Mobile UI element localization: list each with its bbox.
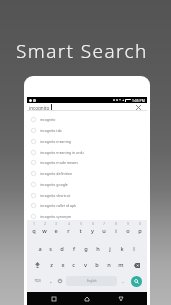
- button[interactable]: h: [92, 241, 104, 257]
- button[interactable]: incognito shortcut: [27, 190, 147, 200]
- staticText: English: [87, 279, 97, 283]
- button[interactable]: g: [80, 241, 92, 257]
- staticText: i: [115, 227, 117, 235]
- button[interactable]: 7: [98, 220, 110, 236]
- button[interactable]: 1: [28, 220, 39, 236]
- button[interactable]: incognito tab: [27, 125, 147, 135]
- button[interactable]: ,: [46, 273, 55, 289]
- staticText: y: [91, 227, 94, 235]
- staticText: 4: [68, 222, 70, 226]
- button[interactable]: Back: [114, 292, 128, 305]
- staticText: g: [84, 245, 88, 253]
- staticText: incognito synonym: [40, 214, 72, 219]
- button[interactable]: l: [128, 241, 140, 257]
- staticText: 2: [44, 222, 46, 226]
- staticText: z: [50, 261, 53, 269]
- staticText: incognito tab: [40, 128, 62, 133]
- staticText: k: [120, 245, 124, 253]
- button[interactable]: 3: [50, 220, 62, 236]
- button[interactable]: incognito: [27, 114, 147, 124]
- staticText: 3: [55, 222, 57, 226]
- staticText: s: [49, 245, 52, 253]
- button[interactable]: incognito caller id apk: [27, 200, 147, 210]
- button[interactable]: Emoji: [55, 273, 65, 289]
- staticText: 8: [115, 222, 117, 226]
- button[interactable]: d: [56, 241, 68, 257]
- staticText: incognito meaning in urdu: [40, 150, 84, 155]
- button[interactable]: m: [115, 257, 127, 273]
- button[interactable]: s: [45, 241, 56, 257]
- button[interactable]: incognito meaning in urdu: [27, 147, 147, 157]
- staticText: incognito mode means: [40, 160, 78, 165]
- button[interactable]: 0: [134, 220, 146, 236]
- staticText: v: [84, 261, 87, 269]
- button[interactable]: 8: [110, 220, 122, 236]
- staticText: ?123: [34, 279, 41, 283]
- button[interactable]: 4: [62, 220, 74, 236]
- staticText: 5: [80, 222, 82, 226]
- button[interactable]: 9: [122, 220, 134, 236]
- button[interactable]: Search: [131, 276, 142, 287]
- staticText: x: [61, 261, 65, 269]
- button[interactable]: 5: [74, 220, 86, 236]
- button[interactable]: incognito meaning: [27, 136, 147, 146]
- staticText: m: [118, 261, 124, 269]
- button[interactable]: Recent apps: [47, 292, 61, 305]
- staticText: 7: [103, 222, 105, 226]
- button[interactable]: c: [68, 257, 79, 273]
- staticText: incognito meaning: [40, 139, 71, 144]
- button[interactable]: incognito google: [27, 179, 147, 189]
- button[interactable]: English: [66, 276, 117, 286]
- staticText: ,: [50, 277, 52, 285]
- button[interactable]: j: [104, 241, 116, 257]
- staticText: 1:05 PM: [132, 98, 145, 103]
- staticText: 0: [139, 222, 141, 226]
- staticText: 1: [33, 222, 35, 226]
- staticText: f: [73, 245, 75, 253]
- button[interactable]: Backspace: [127, 257, 146, 273]
- staticText: .: [122, 277, 124, 285]
- button[interactable]: b: [91, 257, 103, 273]
- staticText: w: [42, 227, 47, 235]
- button[interactable]: z: [46, 257, 57, 273]
- button[interactable]: k: [116, 241, 128, 257]
- staticText: l: [133, 245, 135, 253]
- button[interactable]: incognito synonym: [27, 211, 147, 221]
- staticText: incognito: [29, 105, 50, 111]
- staticText: incognito caller id apk: [40, 203, 77, 208]
- button[interactable]: n: [103, 257, 115, 273]
- button[interactable]: v: [79, 257, 91, 273]
- button[interactable]: incognito definition: [27, 168, 147, 178]
- staticText: j: [109, 245, 111, 253]
- staticText: a: [38, 245, 42, 253]
- staticText: incognito definition: [40, 171, 73, 176]
- button[interactable]: Shift: [28, 257, 46, 273]
- staticText: 9: [127, 222, 129, 226]
- button[interactable]: Clear search: [134, 103, 142, 111]
- staticText: incognito: [40, 117, 56, 122]
- button[interactable]: incognito mode means: [27, 157, 147, 167]
- staticText: incognito google: [40, 182, 68, 187]
- button[interactable]: 6: [86, 220, 98, 236]
- staticText: e: [54, 227, 58, 235]
- staticText: u: [102, 227, 106, 235]
- staticText: h: [96, 245, 100, 253]
- staticText: q: [32, 227, 36, 235]
- staticText: d: [60, 245, 64, 253]
- button[interactable]: f: [68, 241, 80, 257]
- staticText: c: [72, 261, 75, 269]
- staticText: b: [95, 261, 99, 269]
- staticText: t: [79, 227, 82, 235]
- staticText: Smart Search: [16, 38, 148, 64]
- button[interactable]: a: [34, 241, 45, 257]
- button[interactable]: Home: [80, 292, 94, 305]
- staticText: 6: [92, 222, 94, 226]
- button[interactable]: incognito: [27, 103, 147, 111]
- button[interactable]: x: [57, 257, 68, 273]
- button[interactable]: ?123: [28, 273, 46, 289]
- staticText: n: [107, 261, 111, 269]
- staticText: p: [138, 227, 142, 235]
- button[interactable]: .: [118, 273, 127, 289]
- button[interactable]: 2: [39, 220, 50, 236]
- staticText: incognito shortcut: [40, 193, 71, 198]
